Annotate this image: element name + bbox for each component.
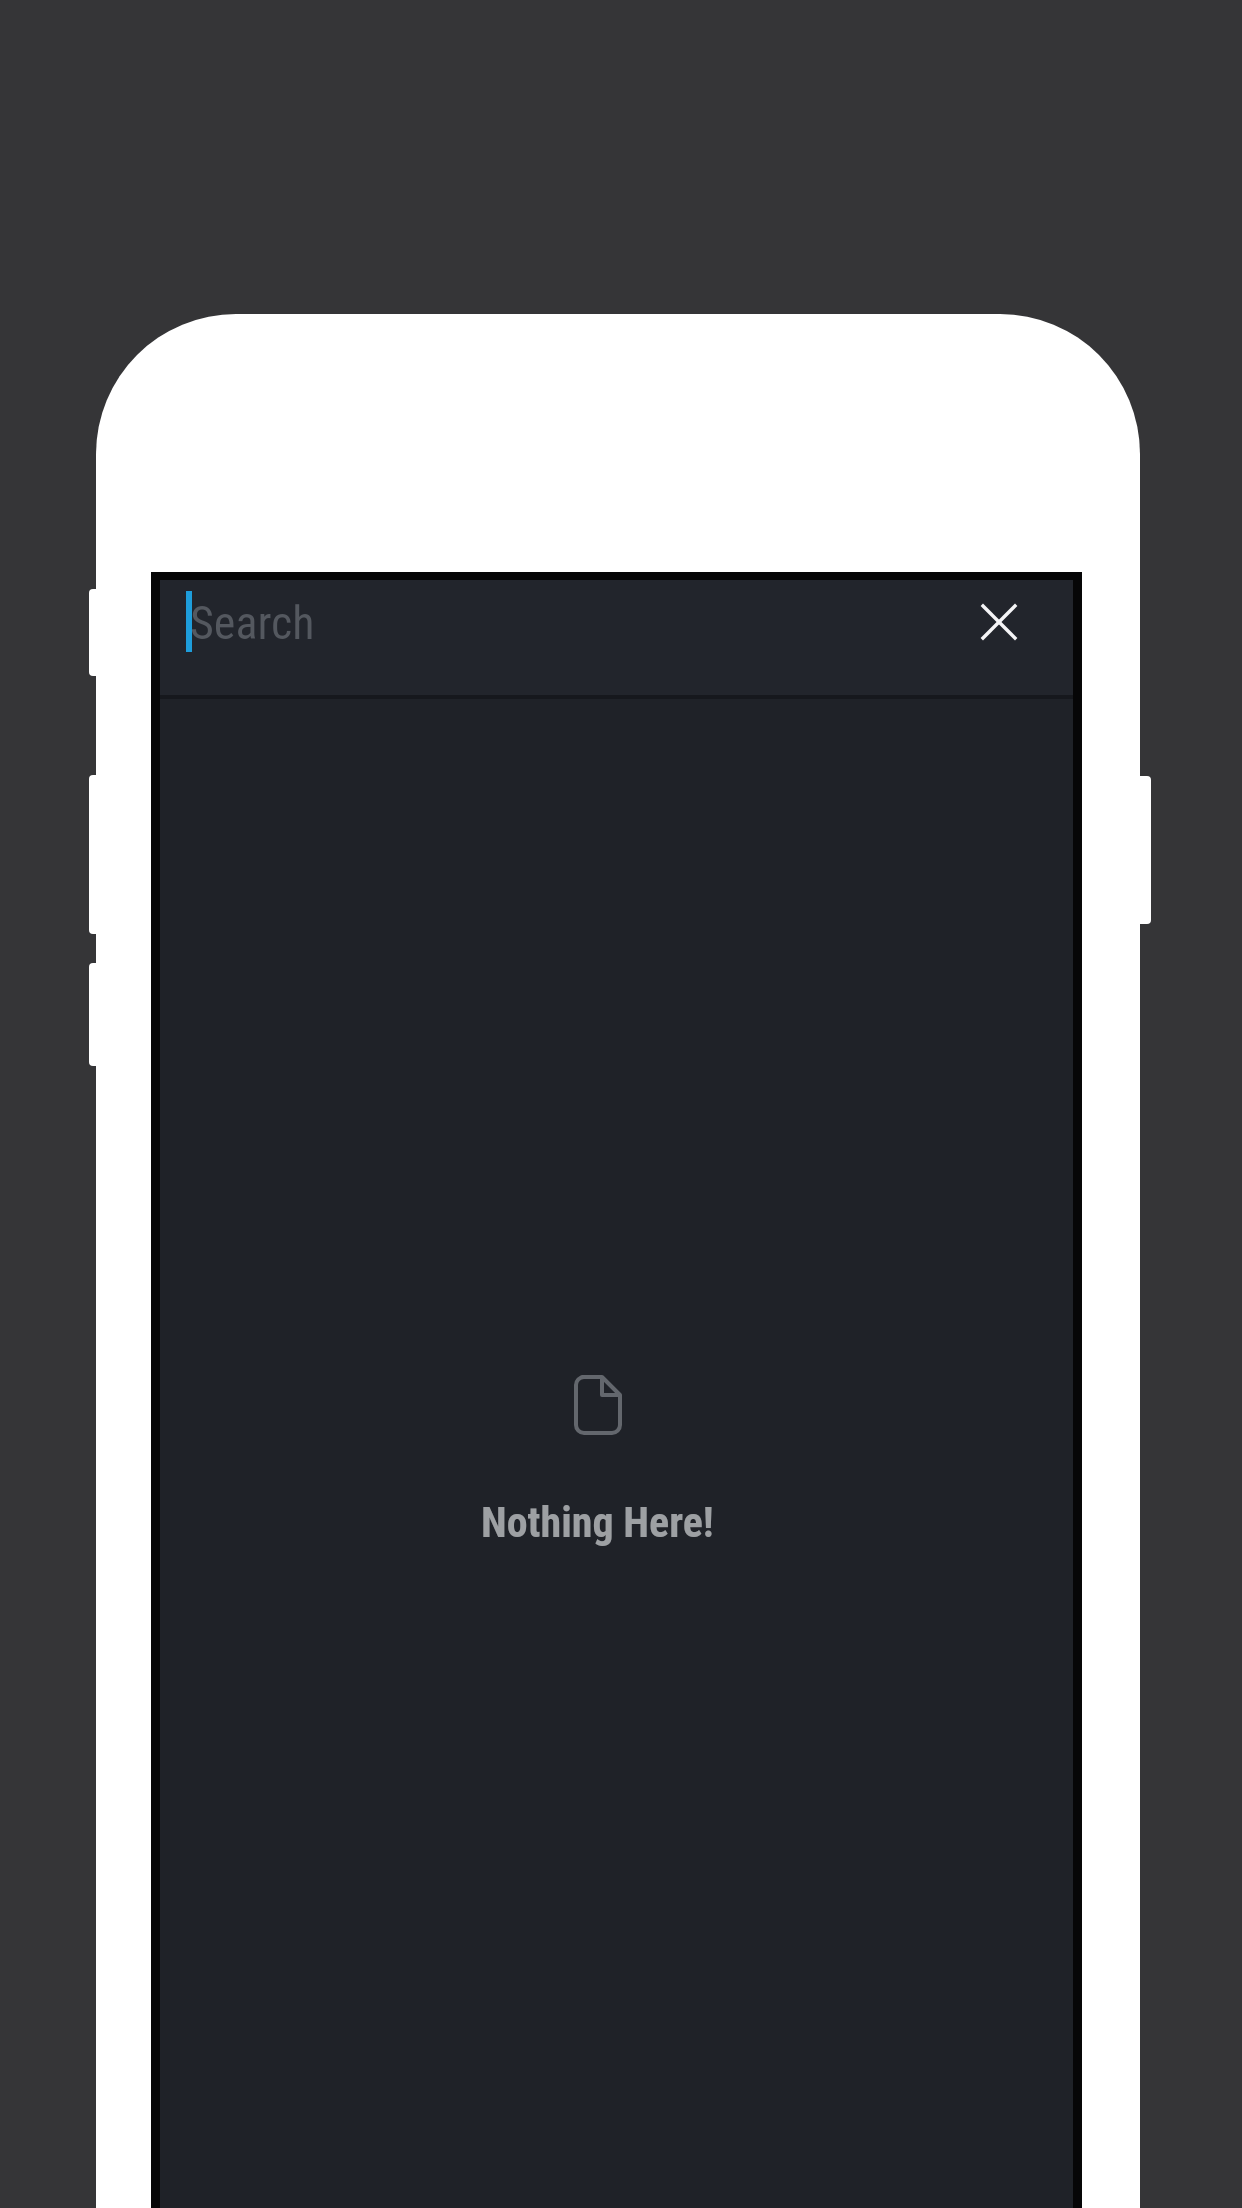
button[interactable] (160, 580, 1073, 695)
staticText: Search (190, 596, 315, 650)
button[interactable] (959, 582, 1039, 662)
staticText: Nothing Here! (481, 1498, 714, 1547)
